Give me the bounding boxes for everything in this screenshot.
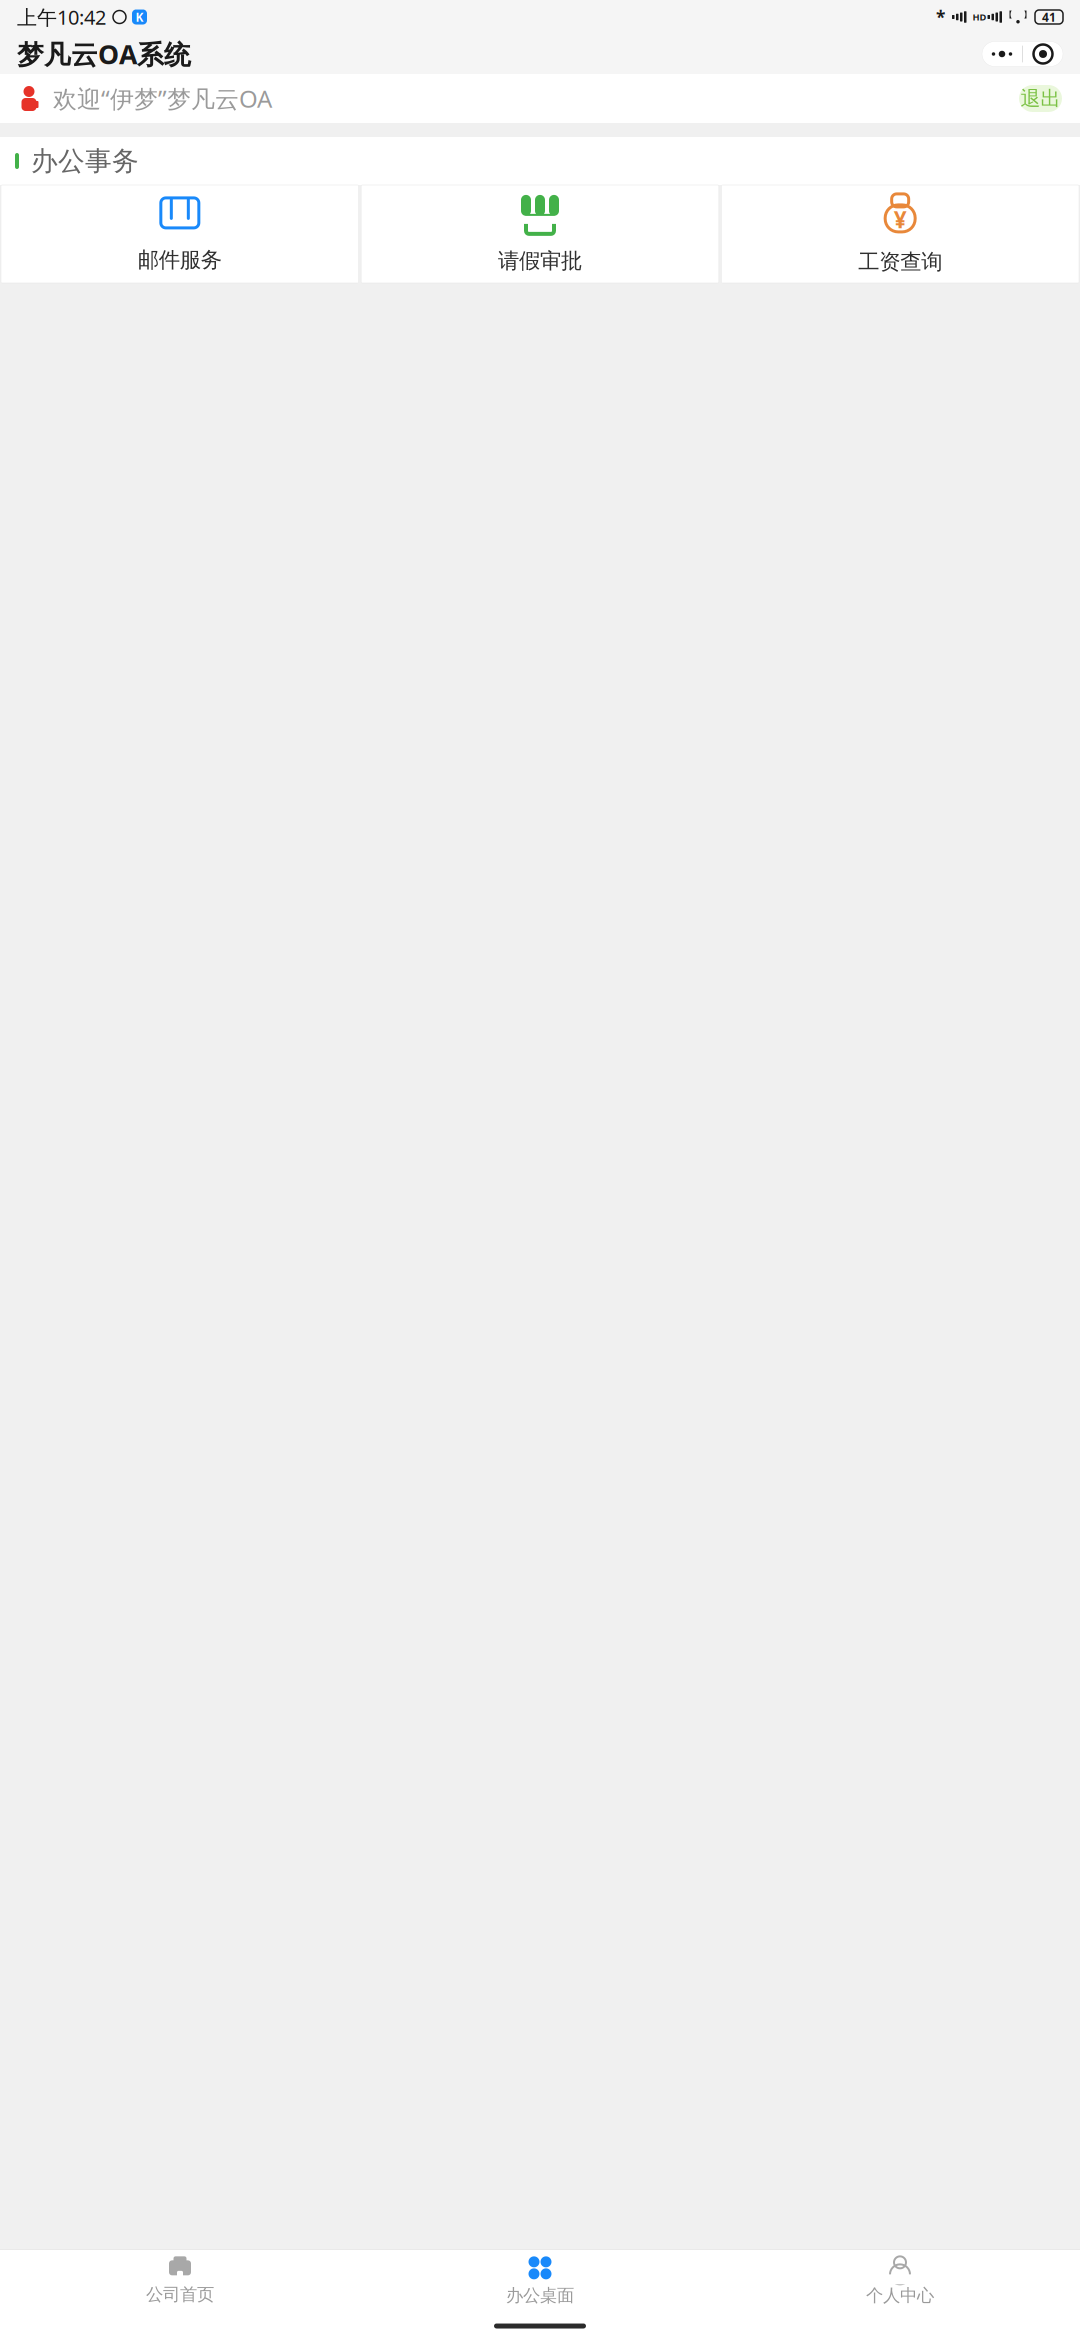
staticText: 邮件服务: [138, 247, 222, 273]
button[interactable]: More: [982, 41, 1022, 66]
staticText: 退出: [1020, 86, 1060, 111]
staticText: 41: [1042, 9, 1056, 25]
staticText: ¥: [894, 204, 907, 234]
button[interactable]: Close: [1023, 41, 1063, 66]
staticText: HD: [972, 11, 986, 23]
staticText: K: [135, 9, 143, 25]
staticText: 办公桌面: [506, 2285, 574, 2306]
staticText: 欢迎“伊梦”梦凡云OA: [53, 83, 272, 114]
staticText: 请假审批: [498, 248, 582, 274]
button[interactable]: ¥: [721, 185, 1079, 283]
staticText: 上午10:42: [17, 4, 106, 30]
button[interactable]: 请假审批: [361, 185, 719, 283]
button[interactable]: 欢迎“伊梦”梦凡云OA: [0, 74, 1080, 123]
button[interactable]: 公司首页: [0, 2254, 360, 2308]
staticText: 梦凡云OA系统: [17, 36, 191, 72]
button[interactable]: 办公桌面: [360, 2254, 720, 2308]
button[interactable]: 邮件服务: [1, 185, 359, 283]
staticText: 个人中心: [866, 2285, 934, 2306]
staticText: 工资查询: [858, 249, 942, 275]
staticText: 办公事务: [31, 145, 139, 177]
staticText: 公司首页: [146, 2284, 214, 2305]
staticText: *: [936, 5, 945, 28]
button[interactable]: 个人中心: [720, 2254, 1080, 2308]
